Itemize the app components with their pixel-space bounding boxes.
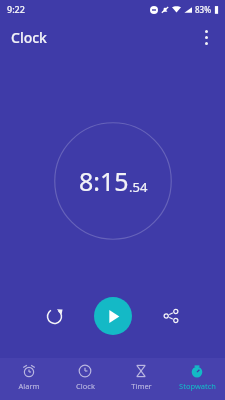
staticText: .54 (129, 178, 148, 196)
staticText: Timer (131, 381, 152, 391)
staticText: Alarm (18, 381, 40, 391)
button[interactable]: Share (153, 298, 189, 334)
staticText: Clock (11, 28, 47, 47)
button[interactable]: Start (94, 297, 132, 335)
staticText: Clock (76, 381, 95, 391)
staticText: Stopwatch (179, 381, 216, 391)
button[interactable]: Clock (57, 358, 113, 400)
button[interactable]: Alarm (0, 358, 57, 400)
staticText: 83% (195, 4, 211, 15)
staticText: 8:15 (79, 164, 129, 198)
button[interactable]: Stopwatch (169, 358, 225, 400)
button[interactable]: More options (191, 22, 221, 52)
button[interactable]: Reset (36, 298, 72, 334)
staticText: 9:22 (7, 3, 25, 15)
button[interactable]: Timer (113, 358, 169, 400)
